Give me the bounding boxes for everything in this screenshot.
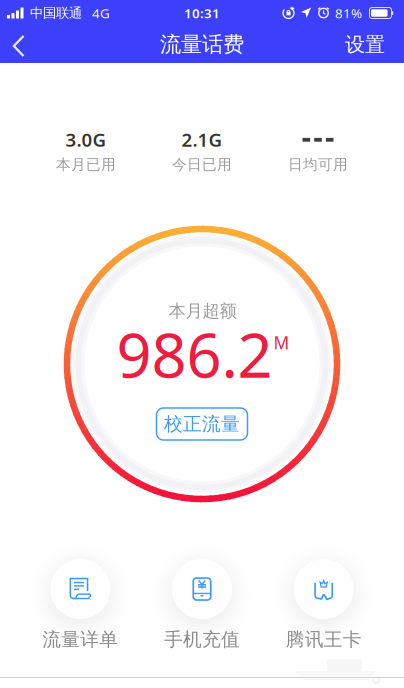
button[interactable]: 返回 [0,26,25,63]
staticText: 设置 [345,32,385,57]
staticText: 3.0G [65,127,106,152]
staticText: 中国联通 [30,5,82,21]
staticText: 手机充值 [164,628,240,651]
staticText: 今日已用 [172,155,232,173]
staticText: 986.2 [116,313,272,395]
button[interactable]: 腾讯王卡 [263,559,384,651]
staticText: 校正流量 [164,412,240,435]
button[interactable]: 设置 [345,32,404,57]
staticText: 本月超额 [168,300,236,322]
button[interactable]: 校正流量 [156,408,247,440]
staticText: 4G [92,4,110,22]
staticText: 流量详单 [42,628,118,651]
staticText: 81% [335,4,362,22]
staticText: 本月已用 [56,155,116,173]
staticText: 腾讯王卡 [286,628,362,651]
button[interactable]: 手机充值 [141,559,263,651]
staticText: 2.1G [181,127,222,152]
staticText: 10:31 [184,4,220,22]
button[interactable]: 流量详单 [19,559,141,651]
staticText: 流量话费 [160,31,244,58]
staticText: 日均可用 [288,155,348,173]
staticText: M [273,331,289,354]
